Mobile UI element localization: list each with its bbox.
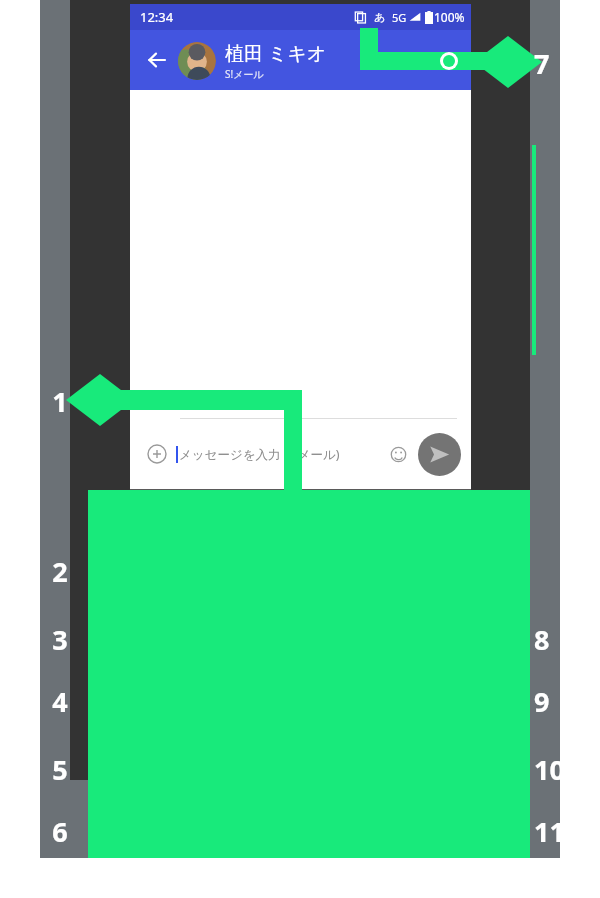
staticText: 11 <box>534 813 586 850</box>
staticText: 7 <box>534 45 586 82</box>
staticText: 10 <box>534 751 586 788</box>
staticText: 3 <box>40 621 80 658</box>
staticText: 8 <box>534 621 586 658</box>
button[interactable]: Add attachment <box>140 437 174 471</box>
button[interactable]: 件名 <box>130 386 471 418</box>
button[interactable]: More options <box>435 45 465 75</box>
staticText: 1 <box>40 383 80 420</box>
button[interactable]: 植田 ミキオ <box>178 40 427 81</box>
staticText: 100% <box>434 9 465 25</box>
button[interactable]: Back <box>142 45 172 75</box>
staticText: 5G <box>392 10 407 25</box>
staticText: メッセージを入力 (S!メール) <box>179 446 340 463</box>
staticText: あ <box>374 10 386 24</box>
button[interactable]: Emoji <box>382 438 414 470</box>
button[interactable]: Send <box>418 433 461 476</box>
staticText: 植田 ミキオ <box>225 40 327 66</box>
staticText: 2 <box>40 553 80 590</box>
button[interactable]: メッセージを入力 (S!メール) <box>174 419 382 489</box>
